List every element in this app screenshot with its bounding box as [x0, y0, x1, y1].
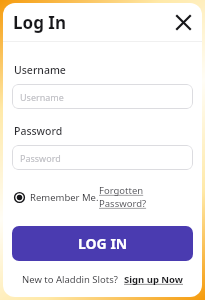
staticText: New to Aladdin Slots? [22, 273, 118, 286]
staticText: Log In [13, 11, 66, 34]
button[interactable]: Password [12, 145, 193, 170]
button[interactable]: Close [170, 9, 196, 35]
staticText: Password [14, 124, 63, 138]
staticText: Forgotten Password? [99, 184, 191, 210]
staticText: Username [14, 63, 66, 77]
staticText: Password [20, 152, 61, 164]
button[interactable]: Username [12, 84, 193, 109]
button[interactable]: LOG IN [12, 226, 193, 261]
button[interactable]: Sign up Now [124, 273, 183, 286]
button[interactable]: Remember Me. [14, 191, 99, 204]
staticText: Remember Me. [30, 191, 99, 204]
staticText: Username [20, 91, 64, 103]
staticText: LOG IN [78, 234, 128, 253]
button[interactable]: Forgotten Password? [99, 184, 191, 210]
staticText: Sign up Now [124, 273, 183, 286]
